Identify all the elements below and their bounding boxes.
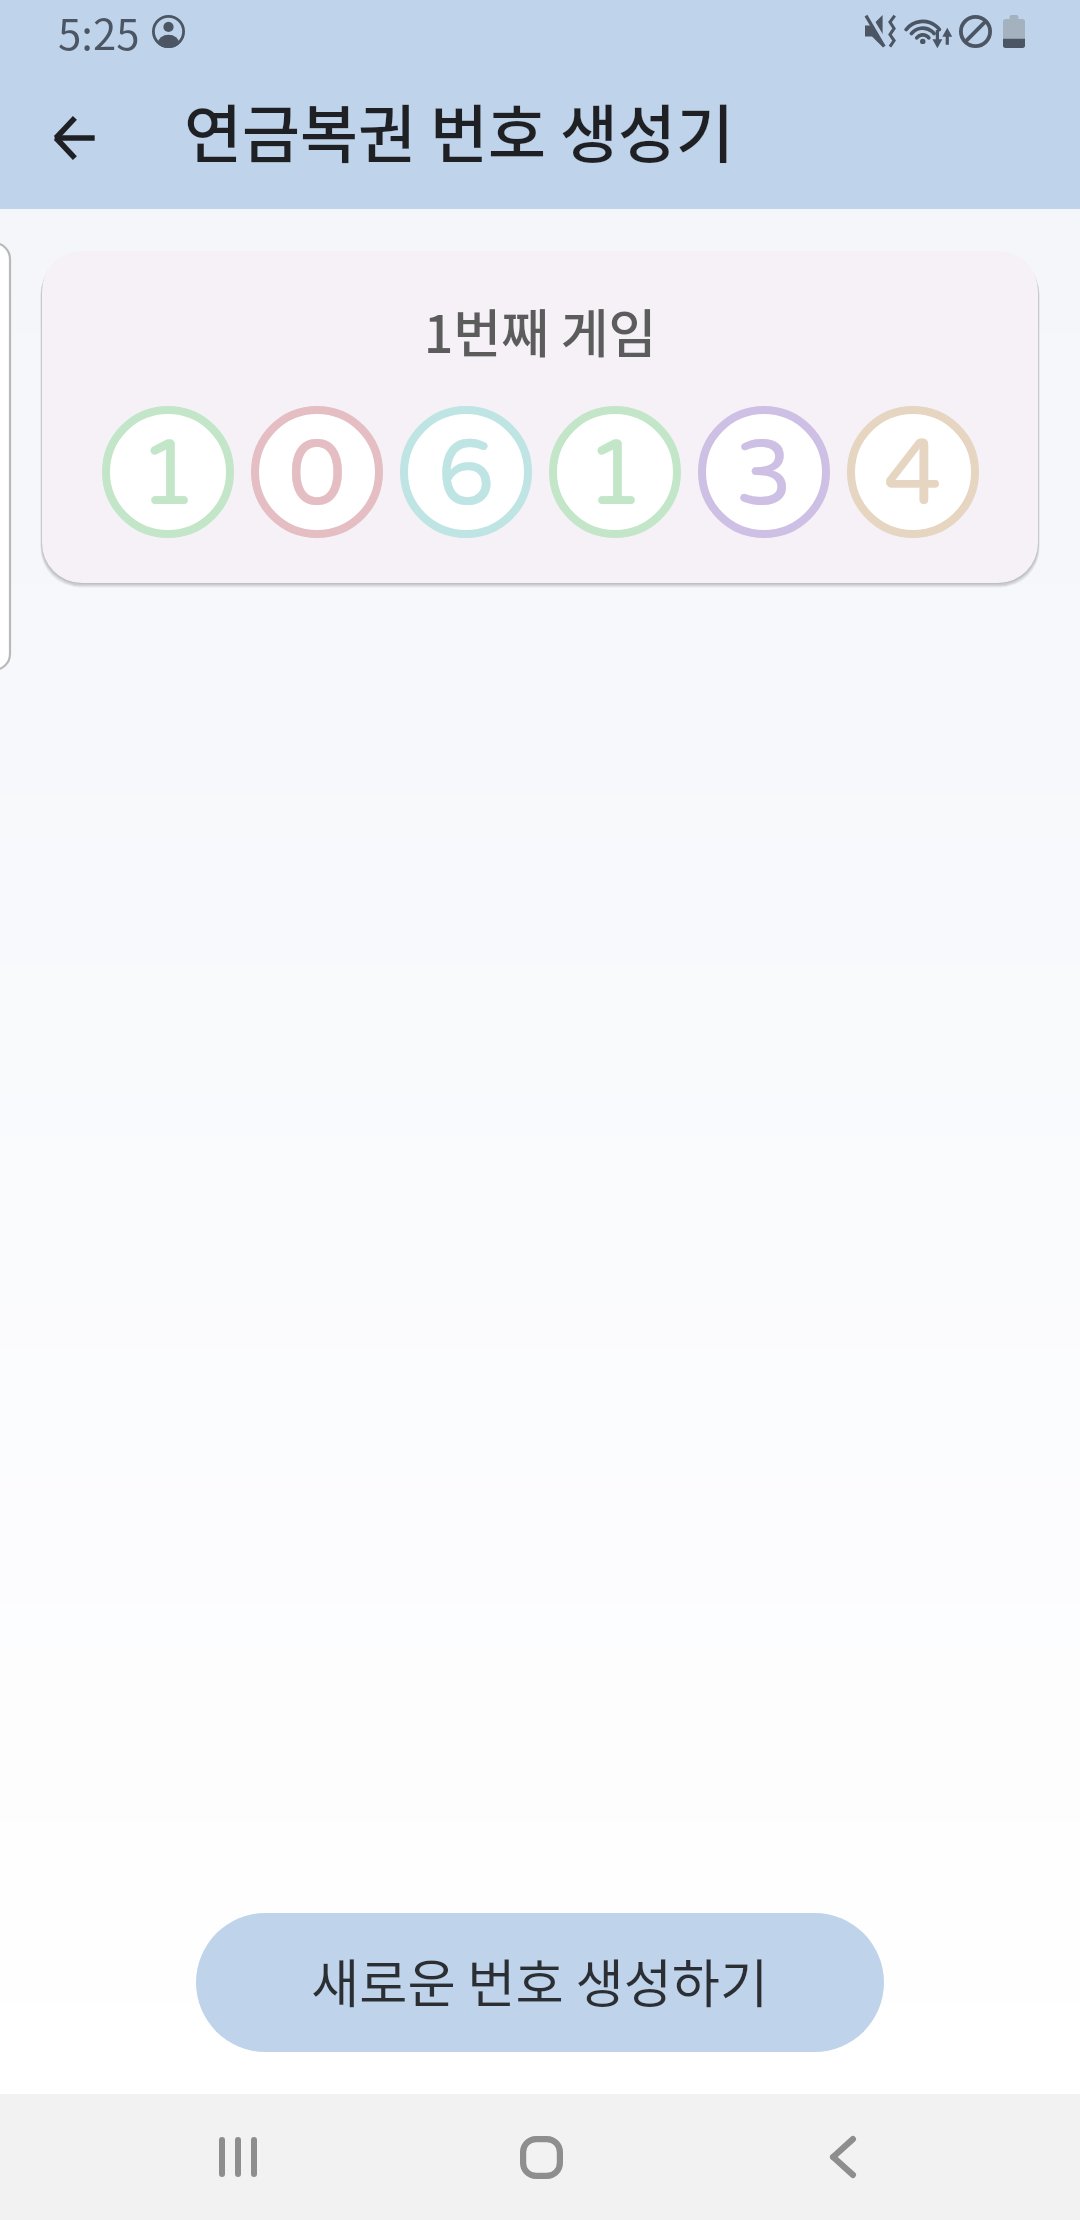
staticText: 4: [884, 420, 942, 531]
button[interactable]: Recent apps: [170, 2094, 306, 2220]
button[interactable]: Home: [473, 2094, 609, 2220]
staticText: 1번째 게임: [42, 293, 1038, 368]
staticText: 6: [437, 420, 495, 531]
staticText: 새로운 번호 생성하기: [311, 1942, 769, 2018]
staticText: 3: [735, 420, 793, 531]
staticText: 5:25: [58, 1, 140, 62]
button[interactable]: 1번째 게임: [42, 251, 1038, 583]
button[interactable]: Back: [20, 84, 128, 192]
staticText: 1: [586, 420, 644, 531]
staticText: 1: [139, 420, 197, 531]
staticText: 0: [288, 420, 346, 531]
button[interactable]: Back: [775, 2094, 911, 2220]
button[interactable]: 새로운 번호 생성하기: [196, 1913, 884, 2052]
staticText: 연금복권 번호 생성기: [184, 84, 734, 175]
